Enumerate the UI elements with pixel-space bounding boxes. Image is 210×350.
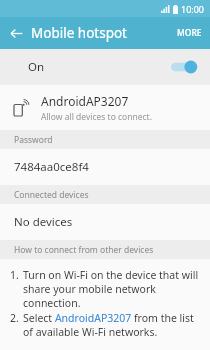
button[interactable]: No devices [0,204,210,240]
staticText: 7484aa0ce8f4 [14,159,89,175]
staticText: On [28,59,45,75]
staticText: 10:00 [181,3,205,15]
staticText: AndroidAP3207 [41,93,129,109]
button[interactable]: Back [5,22,27,44]
button[interactable]: 7484aa0ce8f4 [0,149,210,185]
staticText: Mobile hotspot [31,24,127,42]
staticText: 2. [10,311,23,325]
staticText: Allow all devices to connect. [41,111,152,123]
staticText: MORE [177,27,202,39]
staticText: Select AndroidAP3207 from the list of av… [23,311,204,339]
staticText: Password [14,134,53,146]
staticText: Connected devices [14,189,89,201]
button[interactable]: MORE [169,21,210,45]
button[interactable]: AndroidAP3207 [0,85,210,130]
staticText: No devices [14,214,73,230]
staticText: 1. [10,268,23,282]
staticText: How to connect from other devices [14,244,154,256]
staticText: Turn on Wi-Fi on the device that will sh… [23,268,204,310]
button[interactable]: On [0,49,210,85]
